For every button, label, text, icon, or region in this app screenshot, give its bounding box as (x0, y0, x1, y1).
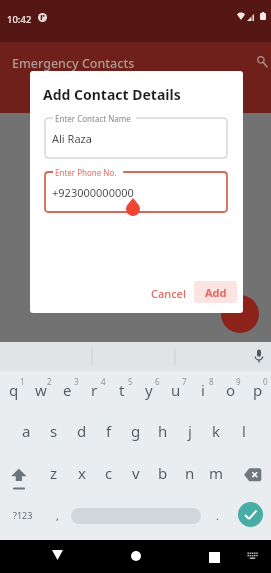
button[interactable]: Enter (238, 502, 263, 527)
staticText: i (201, 380, 205, 400)
staticText: y (145, 380, 153, 400)
staticText: p (253, 380, 263, 400)
staticText: w (35, 380, 47, 400)
staticText: Emergency Contacts (12, 55, 135, 72)
button[interactable]: u (162, 371, 189, 409)
staticText: a (22, 421, 31, 441)
button[interactable]: Add contact (221, 295, 259, 333)
button[interactable]: l (230, 412, 257, 450)
button[interactable]: k (203, 412, 230, 450)
button[interactable]: q (0, 371, 27, 409)
staticText: 4 (101, 376, 106, 387)
staticText: 3 (74, 376, 79, 387)
button[interactable]: Backspace (240, 464, 266, 486)
button[interactable]: m (203, 454, 230, 492)
button[interactable]: b (149, 454, 176, 492)
staticText: u (171, 380, 181, 400)
staticText: 7 (182, 376, 187, 387)
button[interactable]: t (108, 371, 135, 409)
staticText: Ali Raza (52, 131, 92, 146)
staticText: n (185, 463, 195, 483)
staticText: o (226, 380, 236, 400)
button[interactable]: g (122, 412, 149, 450)
button[interactable]: v (122, 454, 149, 492)
button[interactable]: j (176, 412, 203, 450)
button[interactable]: p (244, 371, 271, 409)
button[interactable]: Recents (203, 546, 225, 568)
staticText: z (50, 463, 58, 483)
staticText: 6 (155, 376, 160, 387)
staticText: , (56, 508, 59, 523)
button[interactable]: . (206, 503, 228, 527)
button[interactable]: a (13, 412, 40, 450)
staticText: l (242, 421, 246, 441)
button[interactable]: Back (46, 544, 68, 566)
staticText: k (212, 421, 221, 441)
button[interactable]: Shift (5, 460, 33, 496)
staticText: e (63, 380, 72, 400)
staticText: 8 (209, 376, 214, 387)
staticText: b (158, 463, 168, 483)
button[interactable]: f (95, 412, 122, 450)
staticText: 1 (20, 376, 25, 387)
staticText: 2 (47, 376, 52, 387)
button[interactable]: Home (125, 545, 147, 567)
button[interactable]: ?123 (5, 503, 41, 527)
staticText: h (158, 421, 168, 441)
staticText: j (188, 421, 192, 441)
button[interactable]: Add (194, 281, 237, 303)
button[interactable]: r (81, 371, 108, 409)
button[interactable]: w (27, 371, 54, 409)
button[interactable]: h (149, 412, 176, 450)
button[interactable]: d (68, 412, 95, 450)
staticText: 10:42 (7, 13, 32, 26)
button[interactable]: c (95, 454, 122, 492)
button[interactable]: o (217, 371, 244, 409)
button[interactable]: z (40, 454, 67, 492)
button[interactable]: Switch keyboard (242, 546, 262, 566)
staticText: v (132, 463, 140, 483)
button[interactable]: Search (249, 48, 271, 72)
button[interactable]: Space (71, 508, 201, 524)
staticText: t (119, 380, 125, 400)
staticText: x (78, 463, 86, 483)
staticText: c (105, 463, 113, 483)
staticText: 9 (236, 376, 241, 387)
staticText: ?123 (13, 509, 33, 521)
staticText: Cancel (151, 286, 186, 301)
button[interactable]: x (68, 454, 95, 492)
staticText: Add (205, 285, 227, 300)
button[interactable]: , (46, 503, 68, 527)
button[interactable]: e (54, 371, 81, 409)
staticText: q (9, 380, 19, 400)
staticText: 5 (128, 376, 133, 387)
staticText: g (131, 421, 141, 441)
staticText: Add Contact Details (43, 85, 181, 104)
button[interactable]: Voice input (249, 346, 268, 365)
staticText: f (106, 421, 112, 441)
staticText: s (50, 421, 58, 441)
staticText: +923000000000 (52, 185, 134, 200)
staticText: d (77, 421, 87, 441)
button[interactable]: Cancel (145, 280, 192, 306)
staticText: . (216, 508, 219, 523)
staticText: Enter Phone No. (55, 167, 117, 178)
staticText: 0 (263, 376, 268, 387)
staticText: Enter Contact Name (55, 113, 131, 124)
button[interactable]: y (135, 371, 162, 409)
staticText: m (209, 463, 224, 483)
staticText: r (91, 380, 98, 400)
button[interactable]: n (176, 454, 203, 492)
button[interactable]: s (40, 412, 67, 450)
button[interactable]: i (189, 371, 216, 409)
